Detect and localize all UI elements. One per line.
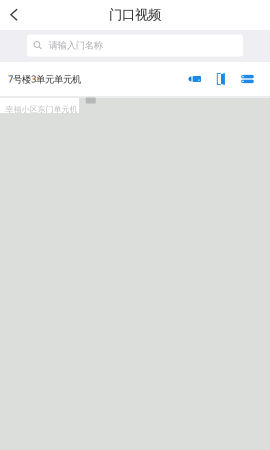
- staticText: 请输入门名称: [49, 40, 103, 51]
- staticText: 门口视频: [109, 6, 161, 23]
- button[interactable]: Video call: [181, 66, 208, 92]
- button[interactable]: Open door: [208, 66, 234, 92]
- staticText: 7号楼3单元单元机: [8, 73, 81, 85]
- button[interactable]: Call records: [234, 66, 261, 92]
- button[interactable]: Back: [0, 1, 27, 29]
- staticText: 幸福小区东门单元机: [5, 104, 77, 114]
